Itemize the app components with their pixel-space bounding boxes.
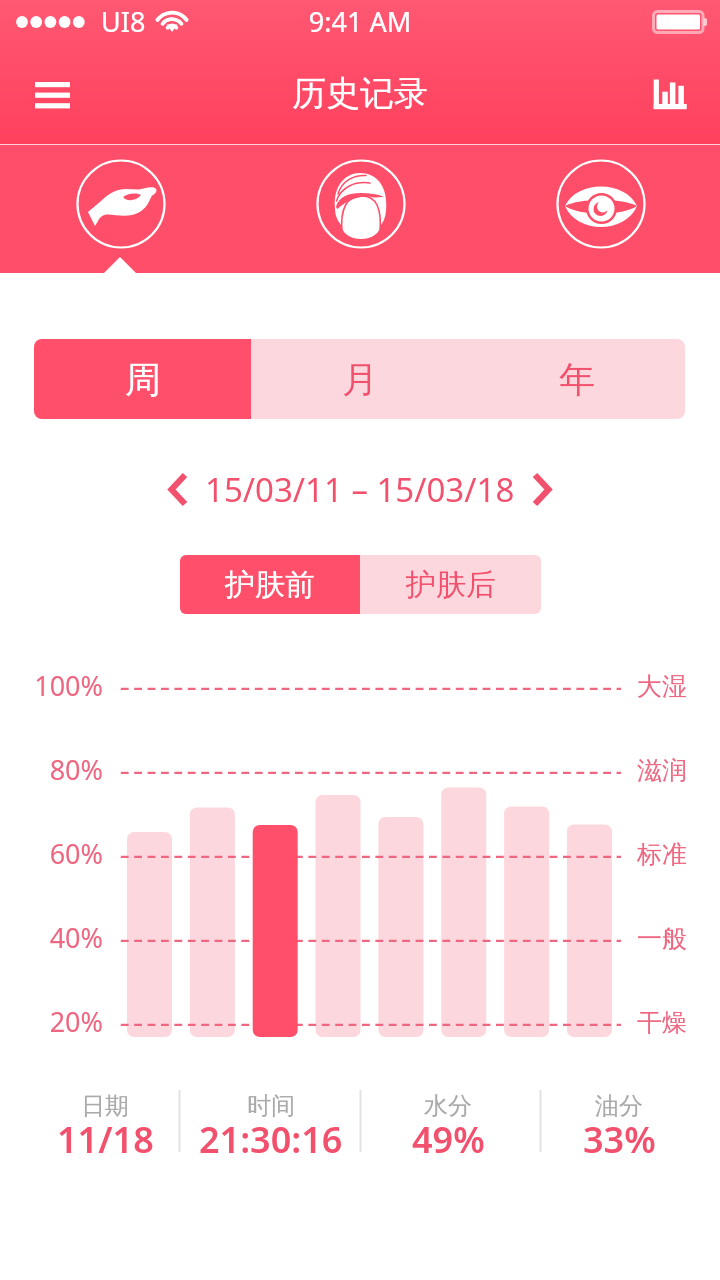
button[interactable]: Menu (15, 66, 90, 122)
staticText: 40% (15, 919, 103, 956)
button[interactable]: Next week (518, 465, 568, 515)
staticText: 33% (583, 1115, 656, 1159)
staticText: 15/03/11 – 15/03/18 (205, 467, 515, 512)
button[interactable]: 年 (468, 339, 685, 419)
button[interactable]: 水分 (360, 1085, 536, 1165)
button[interactable]: 护肤后 (360, 555, 541, 614)
staticText: 护肤前 (225, 566, 315, 604)
staticText: 年 (559, 357, 595, 402)
button[interactable]: Previous week (152, 465, 202, 515)
staticText: 大湿 (637, 671, 687, 702)
staticText: UI8 (101, 3, 146, 40)
button[interactable]: 油分 (532, 1085, 706, 1165)
staticText: 20% (15, 1003, 103, 1040)
button[interactable]: Eye care (480, 145, 720, 273)
staticText: 80% (15, 751, 103, 788)
staticText: 油分 (595, 1091, 643, 1121)
button[interactable]: Face care (240, 145, 480, 273)
button[interactable]: 月 (251, 339, 468, 419)
staticText: 日期 (81, 1091, 129, 1121)
staticText: 水分 (424, 1091, 472, 1121)
staticText: 9:41 AM (0, 3, 720, 40)
staticText: 周 (125, 357, 161, 402)
staticText: 21:30:16 (199, 1115, 343, 1159)
button[interactable]: Statistics (640, 66, 704, 122)
staticText: 49% (412, 1115, 485, 1159)
staticText: 标准 (637, 839, 687, 870)
button[interactable]: Hand care (0, 145, 240, 273)
staticText: 一般 (637, 923, 687, 954)
button[interactable]: 护肤前 (180, 555, 360, 614)
staticText: 干燥 (637, 1007, 687, 1038)
button[interactable]: 时间 (182, 1085, 360, 1165)
staticText: 100% (15, 667, 103, 704)
staticText: 60% (15, 835, 103, 872)
button[interactable]: 周 (34, 339, 251, 419)
staticText: 历史记录 (292, 72, 428, 115)
staticText: 月 (342, 357, 378, 402)
staticText: 11/18 (57, 1115, 154, 1159)
staticText: 滋润 (637, 755, 687, 786)
staticText: 时间 (247, 1091, 295, 1121)
button[interactable]: 日期 (14, 1085, 196, 1165)
staticText: 护肤后 (406, 566, 496, 604)
